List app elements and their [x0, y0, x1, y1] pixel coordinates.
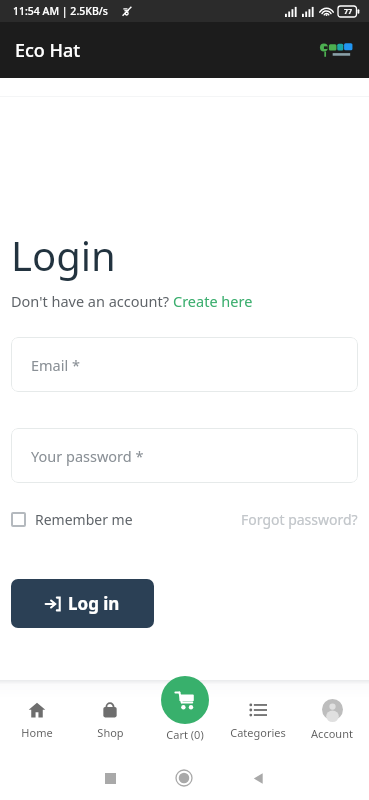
staticText: Create here: [173, 291, 253, 311]
button[interactable]: Create here: [173, 291, 253, 311]
staticText: Email *: [31, 355, 80, 375]
button[interactable]: Back: [221, 756, 295, 800]
staticText: 11:54 AM | 2.5KB/s: [13, 4, 108, 18]
staticText: Remember me: [35, 510, 133, 529]
staticText: Categories: [230, 725, 286, 740]
staticText: Don't have an account?: [11, 291, 173, 311]
staticText: Log in: [68, 592, 120, 615]
button[interactable]: Email *: [11, 337, 358, 392]
staticText: Forgot password?: [241, 510, 358, 529]
button[interactable]: Shop: [73, 680, 147, 756]
staticText: Account: [311, 726, 353, 741]
button[interactable]: Home: [147, 756, 221, 800]
button[interactable]: Recent apps: [73, 756, 147, 800]
button[interactable]: Account: [295, 680, 369, 756]
button[interactable]: Home: [0, 680, 73, 756]
staticText: 77: [344, 7, 353, 17]
staticText: Home: [21, 725, 53, 740]
button[interactable]: Remember me: [11, 510, 133, 529]
button[interactable]: Ekomart logo: [319, 37, 357, 63]
button[interactable]: Categories: [221, 680, 295, 756]
staticText: Shop: [97, 725, 124, 740]
staticText: Eco Hat: [15, 38, 81, 63]
staticText: Cart (0): [166, 727, 204, 742]
button[interactable]: Your password *: [11, 428, 358, 483]
button[interactable]: Cart: [161, 676, 209, 724]
button[interactable]: Forgot password?: [241, 510, 358, 529]
staticText: Your password *: [31, 446, 144, 466]
button[interactable]: Log in: [11, 579, 154, 628]
staticText: Login: [11, 228, 116, 282]
